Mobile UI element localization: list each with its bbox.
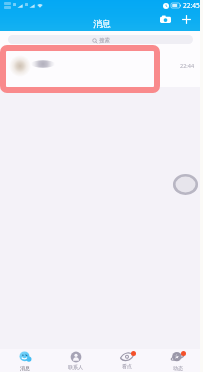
staticText: 联系人 [68, 364, 83, 370]
staticText: 看点 [122, 363, 132, 369]
button[interactable]: 动态 [152, 351, 203, 372]
button[interactable]: 看点 [101, 351, 152, 372]
button[interactable]: Assistive touch [173, 174, 198, 195]
staticText: 22:45 [183, 1, 200, 10]
button[interactable]: 消息 [0, 351, 50, 372]
button[interactable]: 联系人 [50, 351, 101, 372]
staticText: 22:44 [180, 62, 195, 69]
button[interactable]: Camera [155, 9, 176, 30]
button[interactable]: 搜索 [8, 35, 193, 44]
staticText: 消息 [93, 18, 111, 29]
staticText: 消息 [20, 365, 30, 371]
staticText: 搜索 [99, 37, 110, 44]
button[interactable]: Add [176, 9, 197, 30]
button[interactable]: 22:44 [0, 45, 203, 87]
staticText: 动态 [173, 365, 183, 371]
